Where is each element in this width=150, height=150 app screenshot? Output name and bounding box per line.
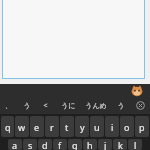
button[interactable]: s	[23, 139, 37, 150]
button[interactable]: i	[105, 116, 119, 137]
staticText: s	[28, 139, 33, 150]
button[interactable]: o	[120, 116, 134, 137]
button[interactable]: <	[36, 97, 55, 114]
staticText: d	[42, 139, 48, 150]
staticText: r	[50, 121, 54, 133]
button[interactable]: j	[98, 139, 112, 150]
button[interactable]: f	[53, 139, 67, 150]
button[interactable]: k	[113, 139, 127, 150]
button[interactable]: p	[135, 116, 149, 137]
staticText: i	[111, 121, 114, 133]
button[interactable]: う	[111, 97, 130, 114]
button[interactable]: e	[30, 116, 44, 137]
staticText: f	[58, 139, 62, 150]
staticText: g	[72, 139, 78, 150]
staticText: k	[118, 139, 123, 150]
staticText: 、	[5, 101, 12, 110]
staticText: u	[94, 121, 100, 133]
staticText: o	[124, 121, 130, 133]
button[interactable]: w	[15, 116, 29, 137]
staticText: e	[34, 121, 40, 133]
button[interactable]: う	[17, 97, 36, 114]
staticText: うに	[61, 101, 76, 110]
button[interactable]: 、	[0, 97, 17, 114]
button[interactable]: u	[90, 116, 104, 137]
staticText: う	[117, 101, 125, 110]
button[interactable]: l	[128, 139, 142, 150]
staticText: a	[12, 139, 18, 150]
button[interactable]: h	[83, 139, 97, 150]
button[interactable]: t	[60, 116, 74, 137]
staticText: y	[80, 121, 85, 133]
staticText: j	[104, 139, 107, 150]
staticText: p	[139, 121, 145, 133]
staticText: q	[5, 121, 11, 133]
button[interactable]: r	[45, 116, 59, 137]
staticText: <	[43, 101, 48, 111]
button[interactable]: d	[38, 139, 52, 150]
staticText: う	[23, 101, 31, 110]
button[interactable]: a	[8, 139, 22, 150]
button[interactable]: Clear suggestions	[130, 97, 150, 114]
staticText: t	[65, 121, 69, 133]
staticText: w	[18, 121, 26, 133]
button[interactable]: g	[68, 139, 82, 150]
staticText: l	[134, 139, 137, 150]
button[interactable]: Emoji keyboard	[131, 85, 143, 97]
button[interactable]: うんめ	[81, 97, 111, 114]
staticText: h	[87, 139, 93, 150]
staticText: うんめ	[85, 101, 107, 110]
button[interactable]: うに	[55, 97, 81, 114]
button[interactable]	[2, 0, 145, 79]
button[interactable]: q	[1, 116, 14, 137]
button[interactable]: y	[75, 116, 89, 137]
